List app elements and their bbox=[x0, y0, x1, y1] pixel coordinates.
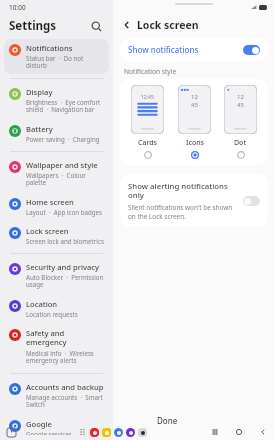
button[interactable]: Recent bbox=[7, 428, 16, 437]
staticText: Lock screen bbox=[26, 226, 69, 236]
staticText: Power saving · Charging bbox=[26, 135, 100, 143]
staticText: Accounts and backup bbox=[26, 382, 104, 392]
button[interactable]: Home bbox=[234, 427, 244, 437]
button[interactable]: Google bbox=[4, 415, 109, 439]
staticText: Icons bbox=[186, 138, 204, 148]
staticText: 12 bbox=[237, 93, 244, 101]
button[interactable]: Notifications bbox=[4, 39, 109, 74]
staticText: Settings bbox=[9, 18, 88, 34]
button[interactable]: Show notifications bbox=[120, 38, 268, 61]
button[interactable]: 12 bbox=[176, 85, 213, 159]
staticText: Wallpapers · Colour palette bbox=[26, 171, 104, 187]
staticText: Show notifications bbox=[128, 44, 243, 55]
button[interactable]: Wallpaper and style bbox=[4, 156, 109, 191]
staticText: Layout · App icon badges bbox=[26, 208, 103, 216]
button[interactable]: Safety and emergency bbox=[4, 324, 109, 369]
button[interactable]: Search bbox=[88, 18, 104, 34]
staticText: Cards bbox=[138, 138, 158, 148]
button[interactable]: Toggle on bbox=[243, 45, 260, 55]
button[interactable]: Back bbox=[258, 427, 268, 437]
button[interactable]: App bbox=[138, 428, 147, 437]
button[interactable]: App bbox=[114, 428, 123, 437]
staticText: Show alerting notifications only bbox=[128, 181, 237, 201]
staticText: Done bbox=[157, 415, 178, 426]
staticText: Notifications bbox=[26, 43, 73, 53]
button[interactable]: Security and privacy bbox=[4, 258, 109, 293]
staticText: Auto Blocker · Permission usage bbox=[26, 273, 104, 289]
button[interactable]: Home screen bbox=[4, 193, 109, 220]
button[interactable]: 12:45 bbox=[129, 85, 166, 159]
button[interactable]: App bbox=[126, 428, 135, 437]
staticText: Security and privacy bbox=[26, 262, 100, 272]
staticText: Manage accounts · Smart Switch bbox=[26, 393, 104, 409]
staticText: Screen lock and biometrics bbox=[26, 237, 104, 245]
button[interactable]: 12 bbox=[222, 85, 259, 159]
staticText: 12:45 bbox=[141, 94, 154, 101]
button[interactable]: Lock screen bbox=[4, 222, 109, 249]
staticText: Location bbox=[26, 299, 58, 309]
staticText: Status bar · Do not disturb bbox=[26, 54, 104, 70]
button[interactable]: Location bbox=[4, 295, 109, 322]
button[interactable]: Accounts and backup bbox=[4, 378, 109, 413]
staticText: Brightness · Eye comfort shield · Naviga… bbox=[26, 98, 104, 114]
button[interactable]: App bbox=[90, 428, 99, 437]
button[interactable]: Back bbox=[120, 18, 134, 32]
staticText: Battery bbox=[26, 124, 53, 134]
staticText: Dot bbox=[234, 138, 247, 148]
staticText: Wallpaper and style bbox=[26, 160, 98, 170]
staticText: Safety and emergency bbox=[26, 328, 104, 348]
staticText: Silent notifications won't be shown on t… bbox=[128, 203, 237, 220]
staticText: 45 bbox=[237, 101, 244, 109]
staticText: 12 bbox=[191, 93, 198, 101]
button[interactable]: App bbox=[102, 428, 111, 437]
staticText: Lock screen bbox=[137, 18, 199, 32]
button[interactable]: Recents bbox=[210, 427, 220, 437]
button[interactable]: Display bbox=[4, 83, 109, 118]
staticText: Google services bbox=[26, 430, 72, 435]
button[interactable]: Show alerting notifications only bbox=[120, 174, 268, 227]
staticText: Notification style bbox=[124, 67, 177, 76]
staticText: 10:00 bbox=[9, 3, 26, 12]
staticText: Display bbox=[26, 87, 53, 97]
staticText: Home screen bbox=[26, 197, 74, 207]
staticText: Medical info · Wireless emergency alerts bbox=[26, 349, 104, 365]
staticText: Location requests bbox=[26, 310, 78, 318]
staticText: 45 bbox=[191, 101, 198, 109]
button[interactable]: All apps bbox=[79, 428, 86, 436]
button[interactable]: Toggle off bbox=[243, 196, 260, 206]
button[interactable]: Battery bbox=[4, 120, 109, 147]
staticText: Google bbox=[26, 419, 52, 429]
